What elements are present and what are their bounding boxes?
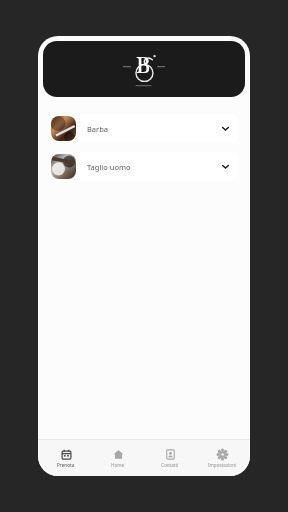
button[interactable]: Impostazioni	[198, 440, 246, 476]
button[interactable]: Barba	[49, 114, 239, 143]
staticText: Barba	[87, 124, 108, 134]
button[interactable]: Home	[94, 440, 142, 476]
staticText: Impostazioni	[208, 462, 237, 468]
button[interactable]: Prenota	[42, 440, 90, 476]
button[interactable]: Taglio uomo	[49, 152, 239, 181]
staticText: B	[136, 49, 151, 79]
staticText: Home	[111, 462, 125, 468]
button[interactable]: Contatti	[146, 440, 194, 476]
other: Expand	[221, 124, 230, 133]
staticText: Prenota	[57, 462, 75, 468]
staticText: Contatti	[161, 462, 179, 468]
staticText: Taglio uomo	[87, 162, 131, 172]
other: Expand	[221, 162, 230, 171]
